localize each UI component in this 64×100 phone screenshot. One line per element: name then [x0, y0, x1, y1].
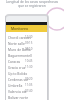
staticText: 11:05: [25, 83, 33, 87]
button[interactable]: Caracas: [6, 58, 48, 64]
staticText: que se registraron: [0, 4, 64, 8]
button[interactable]: Chordi caracas: [6, 34, 48, 40]
staticText: Cerdenas sur: [8, 77, 29, 81]
staticText: Norte salle: [8, 41, 25, 45]
staticText: Caracas: [8, 59, 21, 63]
button[interactable]: Norte salle: [6, 40, 48, 46]
button[interactable]: Baguenmontell: [6, 52, 48, 58]
button[interactable]: Muro de Bahia: [6, 46, 48, 52]
staticText: Up to Bolido: [8, 71, 28, 75]
staticText: 07:40: [25, 89, 33, 93]
button[interactable]: Bolivar norte: [6, 94, 48, 100]
staticText: Muro de Bahia: [8, 47, 31, 51]
staticText: Longitud de los casos sospechosos: [0, 0, 64, 4]
staticText: Valencia ote: [8, 89, 27, 93]
staticText: Chordi caracas: [8, 35, 31, 39]
button[interactable]: Gracia cruz: [6, 64, 48, 70]
button[interactable]: Monitoreo: [6, 25, 48, 32]
button[interactable]: Valencia ote: [6, 88, 48, 94]
staticText: 08:10: [25, 47, 33, 51]
staticText: Umbrella: [8, 83, 23, 87]
staticText: 11:30: [25, 65, 33, 69]
button[interactable]: Umbrella: [6, 82, 48, 88]
staticText: 09:20: [25, 77, 33, 81]
button[interactable]: Cerdenas sur: [6, 76, 48, 82]
staticText: Monitoreo: [11, 26, 28, 31]
button[interactable]: Up to Bolido: [6, 70, 48, 76]
staticText: 09:15: [25, 41, 33, 45]
staticText: Bolivar norte: [8, 95, 29, 99]
staticText: 10:45: [25, 59, 33, 63]
staticText: 12:30: [25, 35, 33, 39]
staticText: Gracia cruz: [8, 65, 26, 69]
staticText: Baguenmontell: [8, 53, 32, 57]
